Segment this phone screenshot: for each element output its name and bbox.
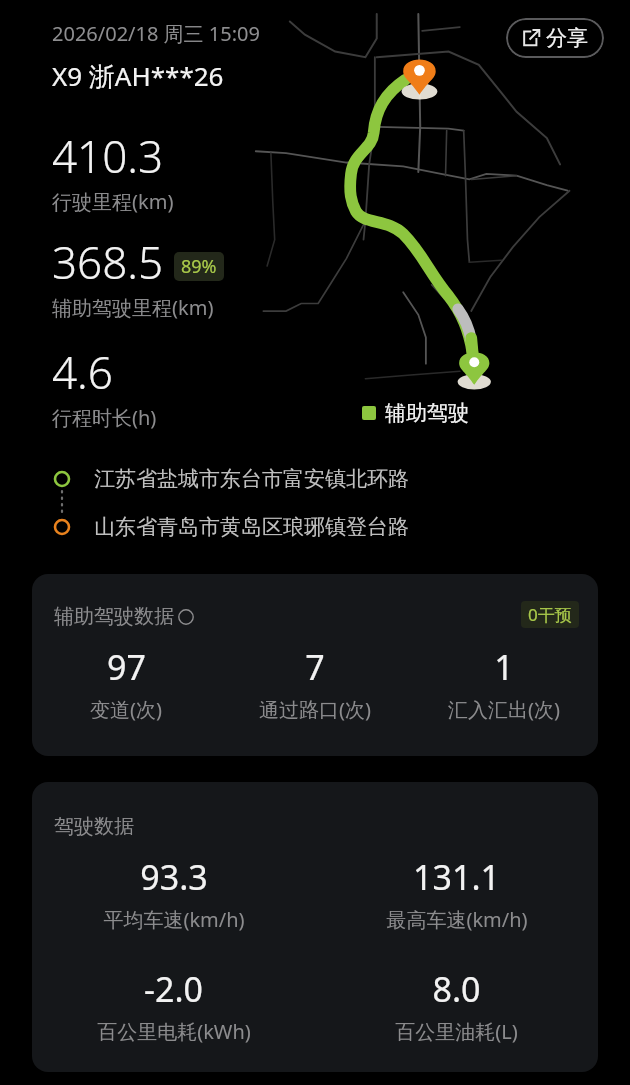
staticText: 410.3 [52, 126, 164, 186]
other: Share [522, 29, 540, 47]
staticText: 汇入汇出(次) [448, 696, 560, 723]
staticText: X9 浙AH***26 [52, 58, 224, 94]
staticText: 行程时长(h) [52, 404, 157, 431]
staticText: 89% [181, 254, 217, 279]
staticText: 8.0 [432, 966, 481, 1012]
button[interactable]: Share [506, 18, 604, 58]
staticText: 驾驶数据 [54, 814, 134, 839]
staticText: 97 [107, 644, 146, 690]
button[interactable]: 辅助驾驶数据 [32, 574, 598, 756]
staticText: 行驶里程(km) [52, 188, 174, 215]
staticText: 0干预 [528, 603, 572, 626]
staticText: 4.6 [52, 342, 113, 402]
staticText: 2026/02/18 周三 15:09 [52, 20, 260, 47]
staticText: 368.5 [52, 232, 164, 292]
staticText: 百公里电耗(kWh) [97, 1018, 251, 1045]
staticText: 百公里油耗(L) [395, 1018, 518, 1045]
staticText: 通过路口(次) [259, 696, 371, 723]
staticText: 平均车速(km/h) [103, 906, 245, 933]
button[interactable]: 驾驶数据 [32, 782, 598, 1072]
staticText: -2.0 [144, 966, 203, 1012]
staticText: 山东省青岛市黄岛区琅琊镇登台路 [94, 514, 409, 540]
staticText: 7 [305, 644, 325, 690]
staticText: 分享 [546, 25, 588, 51]
staticText: 93.3 [140, 854, 208, 900]
staticText: 辅助驾驶 [385, 400, 469, 426]
staticText: 江苏省盐城市东台市富安镇北环路 [94, 466, 409, 492]
staticText: 1 [494, 644, 514, 690]
staticText: 131.1 [413, 854, 500, 900]
staticText: 辅助驾驶里程(km) [52, 294, 214, 321]
staticText: 最高车速(km/h) [386, 906, 528, 933]
staticText: 辅助驾驶数据 [54, 604, 174, 629]
staticText: 变道(次) [90, 696, 162, 723]
